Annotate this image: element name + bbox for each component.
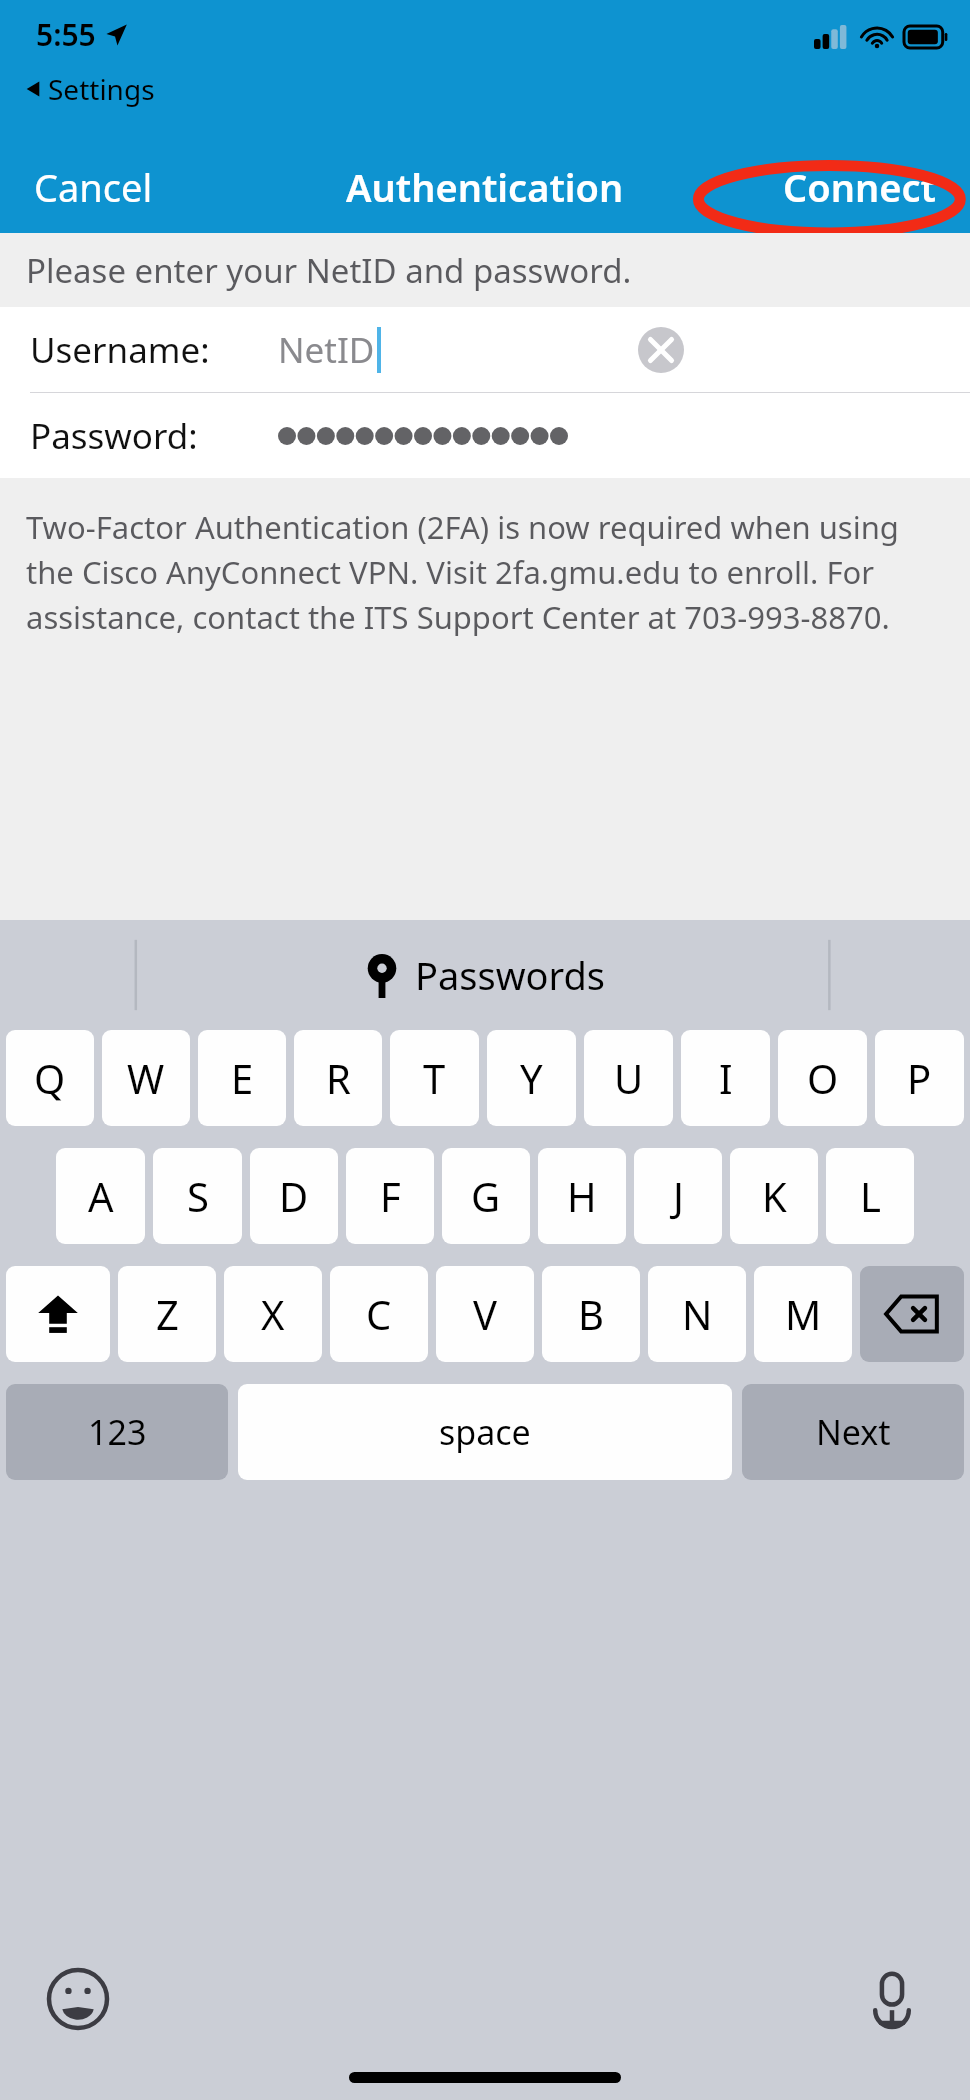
button[interactable]: L — [826, 1148, 914, 1244]
button[interactable]: P — [875, 1030, 964, 1126]
staticText: L — [860, 1169, 881, 1223]
button[interactable]: W — [102, 1030, 190, 1126]
staticText: Authentication — [346, 161, 624, 213]
button[interactable]: J — [634, 1148, 722, 1244]
staticText: K — [762, 1169, 787, 1223]
button[interactable]: G — [442, 1148, 530, 1244]
staticText: N — [682, 1287, 713, 1341]
staticText: P — [907, 1051, 932, 1105]
button[interactable]: V — [436, 1266, 534, 1362]
button[interactable]: K — [730, 1148, 818, 1244]
button[interactable]: M — [754, 1266, 852, 1362]
button[interactable]: R — [294, 1030, 382, 1126]
staticText: W — [127, 1051, 165, 1105]
staticText: I — [719, 1051, 733, 1105]
button[interactable]: U — [584, 1030, 673, 1126]
button[interactable]: N — [648, 1266, 746, 1362]
staticText: Passwords — [415, 949, 606, 1001]
button[interactable]: Q — [6, 1030, 94, 1126]
staticText: Two-Factor Authentication (2FA) is now r… — [26, 506, 946, 638]
button[interactable]: Emoji — [46, 1967, 110, 2031]
button[interactable]: B — [542, 1266, 640, 1362]
button[interactable]: Y — [487, 1030, 576, 1126]
button[interactable]: space — [238, 1384, 732, 1480]
staticText: 5:55 — [36, 14, 96, 55]
button[interactable]: F — [346, 1148, 434, 1244]
button[interactable]: Z — [118, 1266, 216, 1362]
button[interactable]: Dictation — [864, 1971, 920, 2027]
staticText: Next — [816, 1409, 891, 1455]
staticText: NetID — [278, 326, 375, 374]
button[interactable]: Clear text — [638, 327, 684, 373]
button[interactable]: Next — [742, 1384, 964, 1480]
staticText: J — [673, 1169, 684, 1223]
button[interactable]: C — [330, 1266, 428, 1362]
button[interactable]: 123 — [6, 1384, 228, 1480]
staticText: E — [231, 1051, 254, 1105]
button[interactable]: Username: — [0, 307, 970, 392]
staticText: Username: — [30, 326, 210, 374]
staticText: O — [807, 1051, 839, 1105]
staticText: F — [380, 1169, 401, 1223]
staticText: S — [187, 1169, 209, 1223]
staticText: Settings — [48, 70, 155, 108]
staticText: A — [88, 1169, 114, 1223]
button[interactable]: Connect — [749, 147, 970, 227]
button[interactable]: O — [778, 1030, 867, 1126]
staticText: U — [614, 1051, 644, 1105]
button[interactable]: E — [198, 1030, 286, 1126]
staticText: Connect — [783, 161, 936, 213]
staticText: Password: — [30, 412, 198, 460]
staticText: R — [326, 1051, 351, 1105]
button[interactable]: Cancel — [0, 147, 187, 227]
button[interactable]: H — [538, 1148, 626, 1244]
button[interactable]: S — [153, 1148, 242, 1244]
staticText: M — [785, 1287, 822, 1341]
staticText: Y — [520, 1051, 543, 1105]
staticText: space — [439, 1409, 531, 1455]
staticText: Please enter your NetID and password. — [26, 248, 632, 293]
button[interactable]: I — [681, 1030, 770, 1126]
button[interactable]: D — [250, 1148, 338, 1244]
staticText: Q — [34, 1051, 66, 1105]
staticText: H — [567, 1169, 597, 1223]
button[interactable]: A — [56, 1148, 145, 1244]
staticText: X — [261, 1287, 285, 1341]
staticText: T — [423, 1051, 446, 1105]
button[interactable]: X — [224, 1266, 322, 1362]
staticText: C — [366, 1287, 392, 1341]
button[interactable]: Passwords — [357, 941, 614, 1009]
staticText: D — [279, 1169, 309, 1223]
staticText: 123 — [88, 1409, 147, 1455]
button[interactable]: Settings — [20, 68, 159, 110]
staticText: V — [473, 1287, 497, 1341]
button[interactable]: T — [390, 1030, 479, 1126]
button[interactable]: Password: — [0, 393, 970, 478]
staticText: Z — [156, 1287, 179, 1341]
button[interactable]: Shift — [6, 1266, 110, 1362]
button[interactable]: Backspace — [860, 1266, 964, 1362]
staticText: B — [578, 1287, 604, 1341]
staticText: Cancel — [34, 161, 153, 213]
staticText: G — [471, 1169, 501, 1223]
